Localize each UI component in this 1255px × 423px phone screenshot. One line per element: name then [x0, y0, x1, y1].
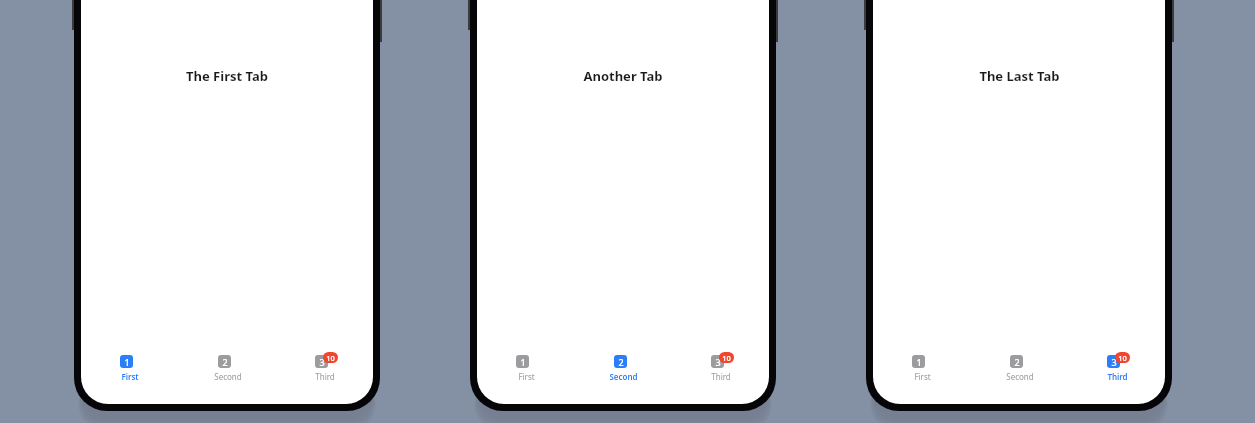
staticText: Second: [1006, 371, 1034, 382]
staticText: 10: [326, 353, 335, 363]
button[interactable]: First: [909, 352, 935, 382]
button[interactable]: Second: [609, 352, 638, 382]
other: Third: [1107, 355, 1120, 368]
other: First: [516, 355, 529, 368]
other: First: [120, 355, 133, 368]
staticText: First: [518, 371, 535, 382]
button[interactable]: First: [513, 352, 539, 382]
staticText: First: [914, 371, 931, 382]
staticText: 2: [1014, 356, 1020, 368]
button[interactable]: Second: [214, 352, 242, 382]
staticText: 3: [715, 356, 721, 368]
staticText: Third: [1107, 371, 1128, 382]
staticText: 1: [124, 356, 130, 368]
other: Second: [218, 355, 231, 368]
staticText: The Last Tab: [979, 67, 1060, 85]
button[interactable]: Third: [1104, 352, 1130, 382]
other: Second: [1010, 355, 1023, 368]
staticText: 3: [1111, 356, 1117, 368]
button[interactable]: Second: [1006, 352, 1034, 382]
staticText: 2: [222, 356, 228, 368]
button[interactable]: Third: [312, 352, 338, 382]
other: First: [912, 355, 925, 368]
staticText: Third: [315, 371, 335, 382]
other: Third: [315, 355, 328, 368]
staticText: Second: [609, 371, 638, 382]
other: Second: [614, 355, 627, 368]
staticText: 10: [722, 353, 731, 363]
staticText: The First Tab: [186, 67, 268, 85]
staticText: Second: [214, 371, 242, 382]
staticText: 2: [618, 356, 624, 368]
staticText: First: [121, 371, 139, 382]
other: Third: [711, 355, 724, 368]
staticText: Third: [711, 371, 731, 382]
button[interactable]: First: [117, 352, 143, 382]
staticText: Another Tab: [583, 67, 663, 85]
staticText: 3: [319, 356, 325, 368]
staticText: 1: [916, 356, 922, 368]
button[interactable]: Third: [708, 352, 734, 382]
staticText: 1: [520, 356, 526, 368]
staticText: 10: [1118, 353, 1127, 363]
